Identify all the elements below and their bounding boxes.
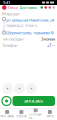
staticText: Мои заказы [0,114,14,118]
button[interactable]: Главная [14,108,28,120]
staticText: Сообщения [29,113,43,120]
button[interactable]: Записать [2,96,11,105]
staticText: +7 ··· [47,43,55,48]
staticText: ЗАКАЗАТЬ [24,98,44,104]
staticText: Эконом [41,36,55,42]
staticText: Маршрут [2,11,20,16]
staticText: Тип поездки [2,36,23,42]
staticText: Такси [6,5,17,10]
button[interactable]: Action [26,83,37,94]
staticText: Меню [46,114,53,118]
button[interactable]: Мои заказы [0,108,14,120]
button[interactable]: Меню [43,108,57,120]
button[interactable]: Action [2,83,13,94]
staticText: 9:41 [3,0,10,5]
staticText: ул. Большая Никитская, 24 [6,17,54,23]
staticText: Шереметьево, терминал B [6,30,54,35]
staticText: Главная [16,114,27,118]
button[interactable]: ЗАКАЗАТЬ [12,96,55,106]
staticText: подъезд 2, этаж 5 [6,23,37,28]
staticText: Доставка [17,5,36,10]
button[interactable]: Сообщения [28,108,43,120]
button[interactable]: Action [14,83,25,94]
staticText: Телефон [2,43,17,48]
